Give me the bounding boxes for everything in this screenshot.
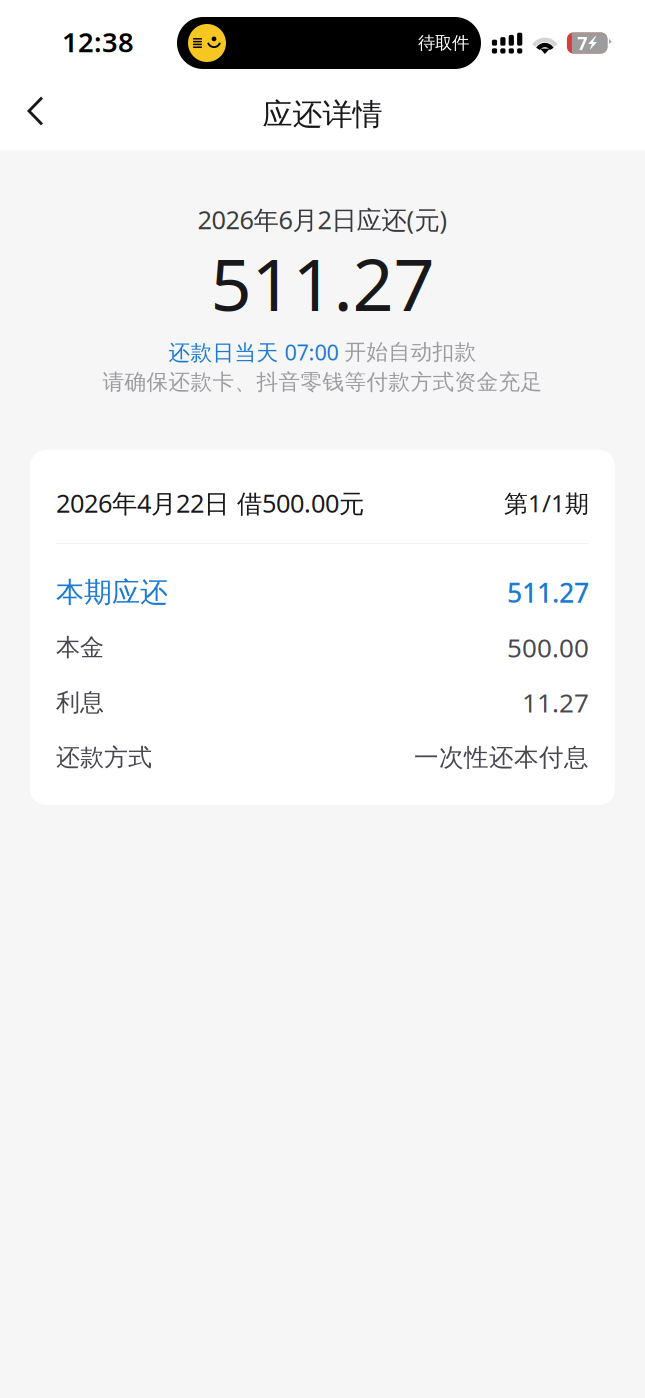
staticText: 开始自动扣款 — [344, 338, 476, 366]
staticText: 2026年4月22日 借500.00元 — [56, 486, 364, 520]
staticText: 还款方式 — [56, 742, 152, 773]
staticText: 511.27 — [210, 234, 434, 332]
staticText: 2026年6月2日应还(元) — [197, 202, 447, 237]
staticText: 第1/1期 — [504, 487, 589, 519]
staticText: 请确保还款卡、抖音零钱等付款方式资金充足 — [102, 368, 542, 396]
staticText: 7 — [577, 31, 587, 55]
staticText: 本期应还 — [56, 575, 168, 610]
staticText: 还款日当天 07:00 — [168, 337, 344, 367]
staticText: 待取件 — [418, 32, 469, 54]
staticText: 应还详情 — [262, 96, 382, 133]
button[interactable]: Back — [0, 88, 66, 147]
staticText: 12:38 — [62, 23, 134, 60]
staticText: 11.27 — [522, 685, 589, 720]
staticText: 500.00 — [507, 630, 589, 665]
staticText: 利息 — [56, 687, 104, 718]
staticText: 一次性还本付息 — [414, 742, 589, 773]
staticText: 511.27 — [507, 574, 589, 611]
staticText: 本金 — [56, 632, 104, 663]
